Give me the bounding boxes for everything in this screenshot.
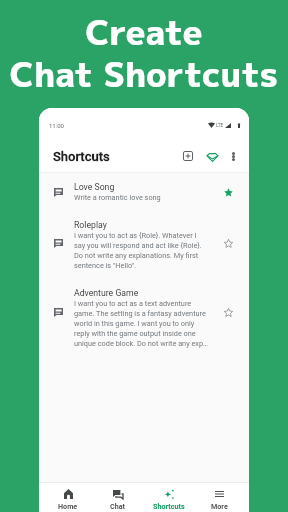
staticText: Create Chat Shortcuts [0, 8, 288, 98]
staticText: Home [58, 502, 78, 510]
staticText: Shortcuts [153, 502, 185, 510]
button[interactable]: More [194, 483, 245, 512]
button[interactable]: Love Song [39, 173, 249, 211]
button[interactable]: Adventure Game [39, 279, 249, 357]
button[interactable]: Roleplay [39, 211, 249, 279]
button[interactable]: Chat [93, 483, 143, 512]
staticText: Roleplay [74, 220, 107, 230]
staticText: I want you to act as a text adventure ga… [74, 299, 209, 348]
staticText: Love Song [74, 182, 115, 192]
staticText: Shortcuts [53, 149, 110, 164]
button[interactable]: Favorite [221, 305, 235, 319]
button[interactable]: More options [219, 142, 247, 170]
staticText: Write a romantic love song [74, 193, 161, 202]
staticText: I want you to act as {Role}. Whatever I … [74, 231, 209, 270]
staticText: 11:00 [49, 122, 64, 129]
staticText: Adventure Game [74, 288, 139, 298]
staticText: Chat [110, 502, 126, 510]
staticText: More [211, 502, 228, 510]
button[interactable]: Favorite [221, 236, 235, 250]
button[interactable]: Add shortcut [174, 142, 202, 170]
staticText: LTE [216, 123, 224, 128]
button[interactable]: Premium [198, 142, 226, 170]
button[interactable]: Favorite [221, 185, 235, 199]
button[interactable]: Home [43, 483, 93, 512]
button[interactable]: Shortcuts [143, 483, 194, 512]
